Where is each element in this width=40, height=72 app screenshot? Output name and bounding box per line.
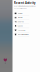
- staticText: Across all devices: [14, 7, 27, 9]
- button[interactable]: Shared: [12, 20, 40, 24]
- staticText: Saved: [18, 25, 23, 27]
- staticText: Everything that happened today: [14, 5, 36, 7]
- button[interactable]: Photos: [12, 11, 40, 15]
- staticText: Recent Activity: [14, 1, 36, 5]
- button[interactable]: Favourites: [12, 28, 40, 32]
- staticText: Photos: [18, 12, 23, 14]
- staticText: Shared: [18, 21, 24, 23]
- staticText: Favourites: [18, 29, 26, 31]
- button[interactable]: Saved: [12, 24, 40, 28]
- button[interactable]: Albums: [12, 15, 40, 20]
- staticText: Recently Deleted: [18, 33, 29, 35]
- button[interactable]: Recently Deleted: [12, 32, 40, 36]
- staticText: Albums: [18, 17, 23, 18]
